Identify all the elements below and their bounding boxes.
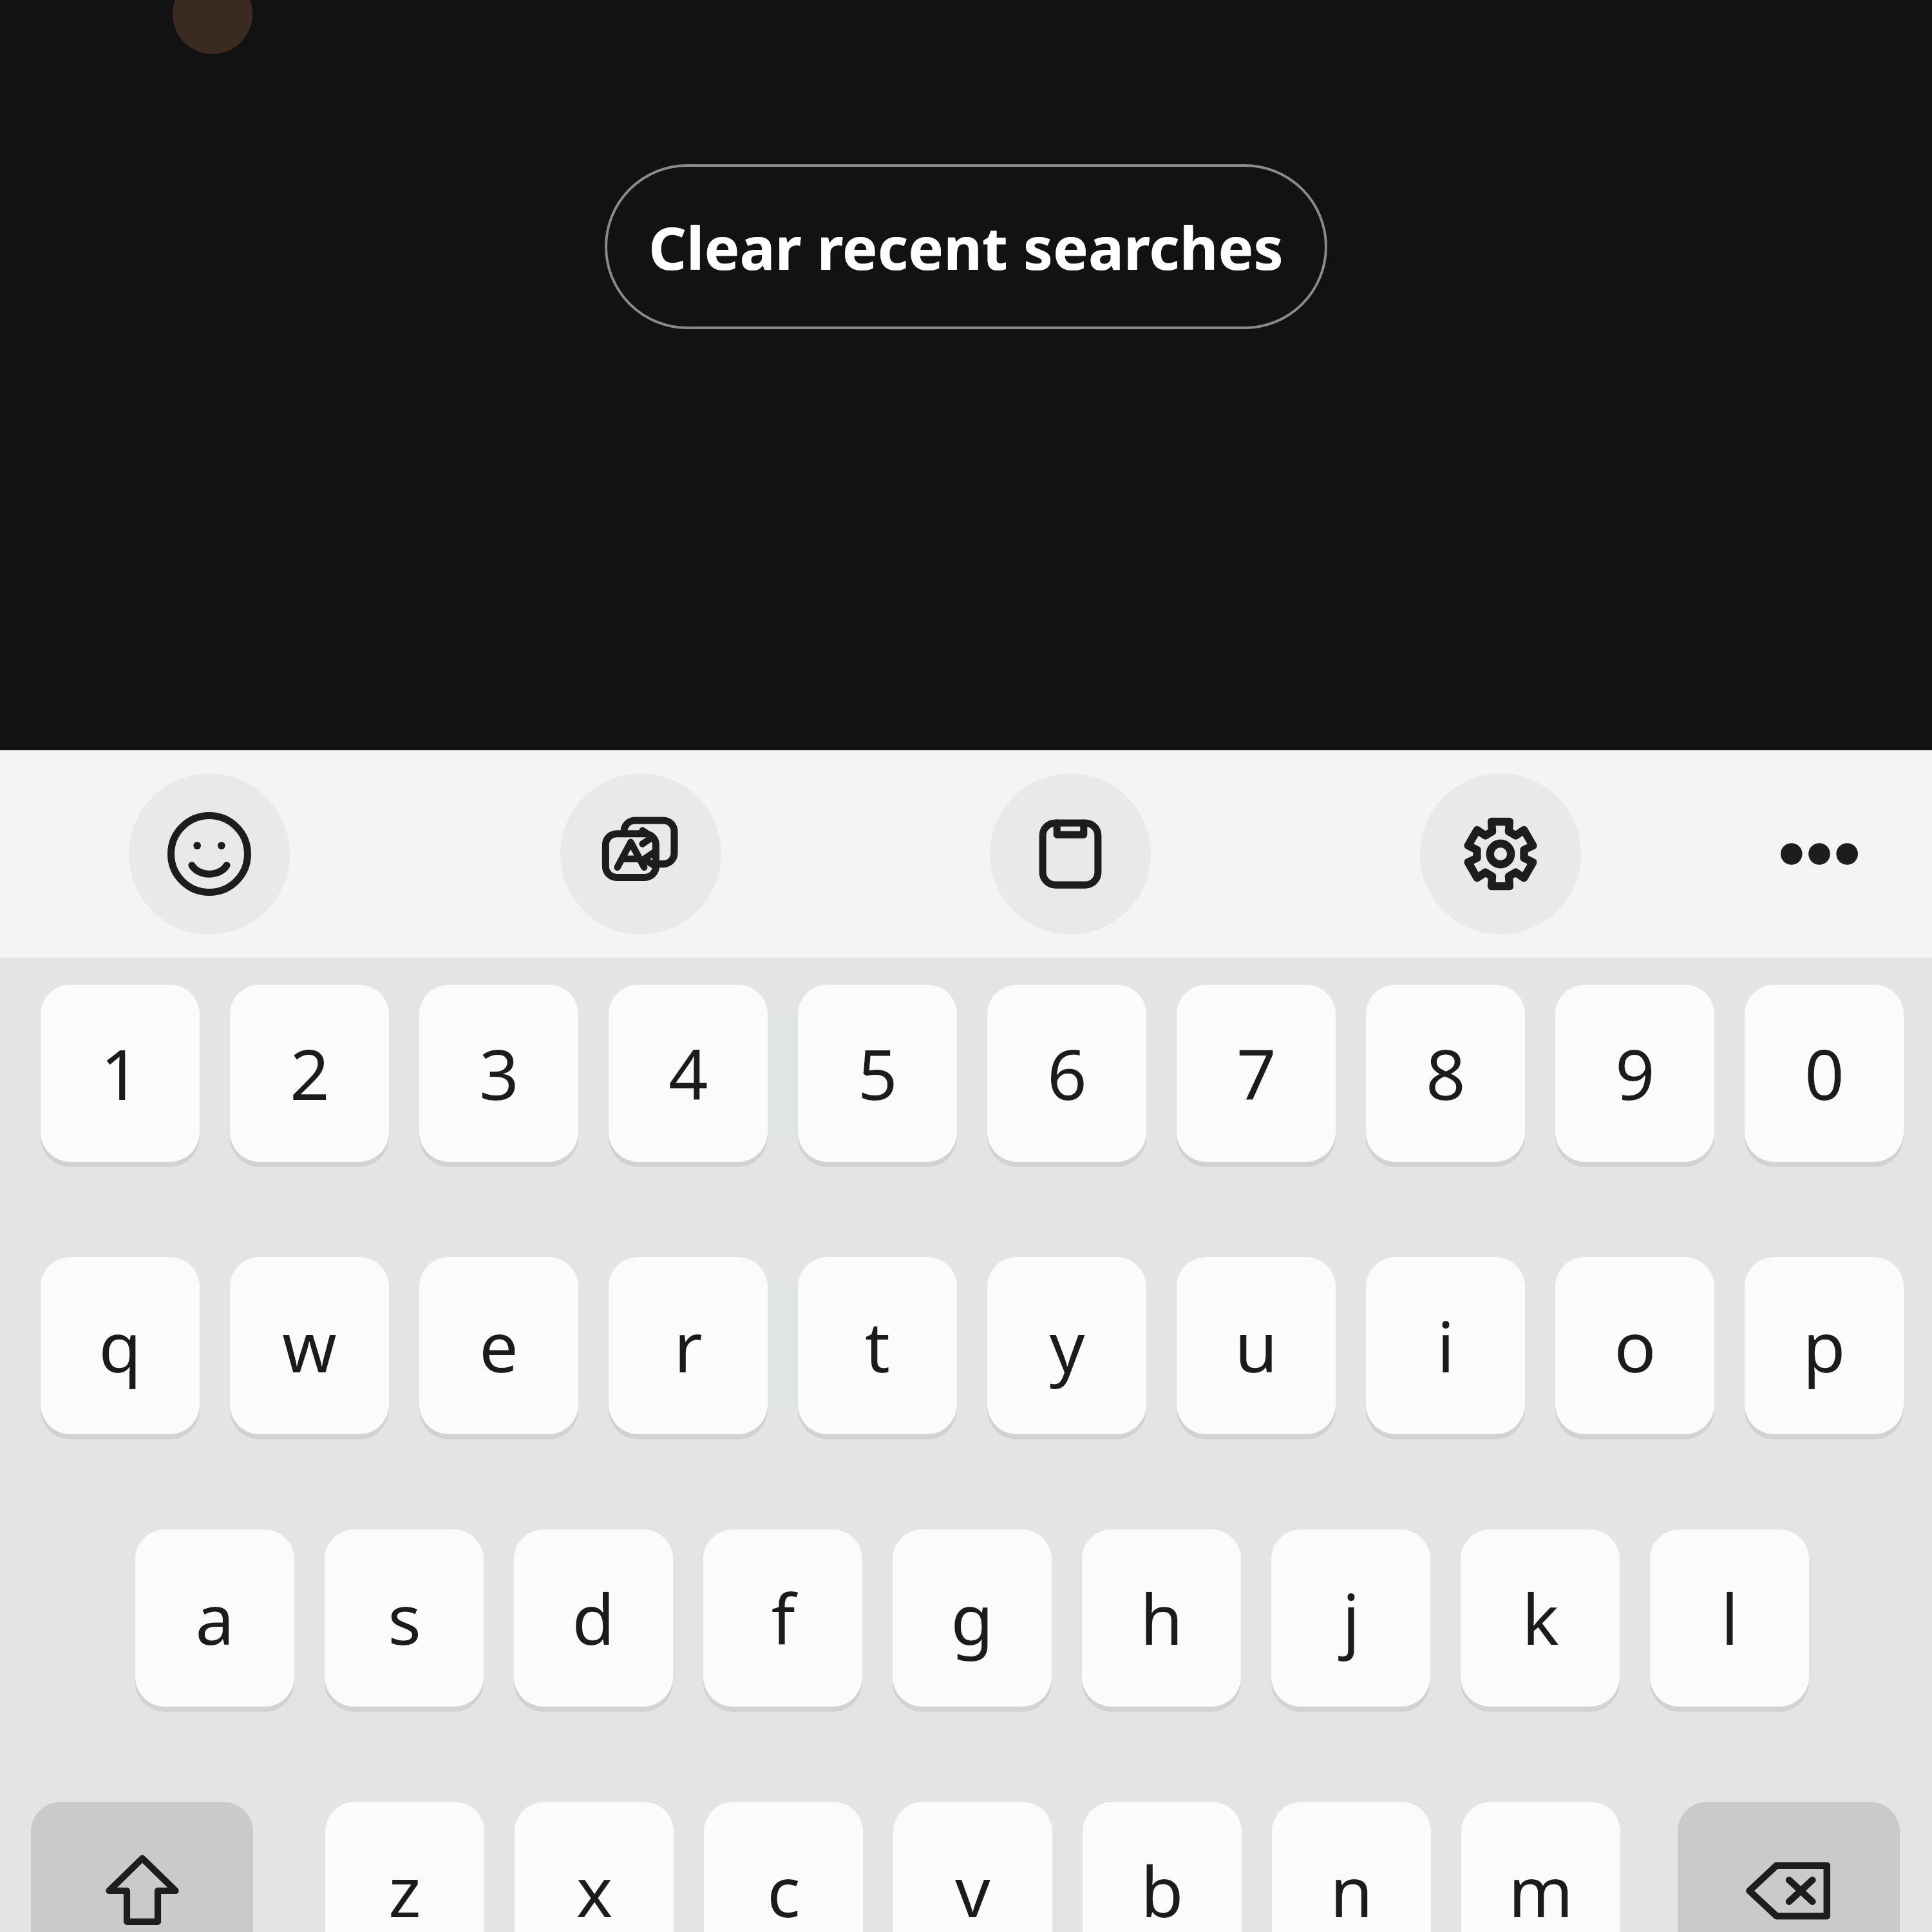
- staticText: r: [674, 1298, 703, 1393]
- button[interactable]: u: [1177, 1257, 1336, 1434]
- button[interactable]: e: [419, 1257, 578, 1434]
- button[interactable]: 3: [419, 985, 578, 1162]
- staticText: g: [951, 1571, 994, 1665]
- button[interactable]: r: [609, 1257, 768, 1434]
- button[interactable]: d: [514, 1529, 673, 1707]
- button[interactable]: h: [1082, 1529, 1241, 1707]
- button[interactable]: l: [1650, 1529, 1809, 1707]
- staticText: a: [195, 1571, 234, 1665]
- button[interactable]: More options: [1745, 780, 1893, 928]
- button[interactable]: Emoji: [129, 773, 290, 934]
- staticText: e: [479, 1298, 518, 1393]
- button[interactable]: p: [1745, 1257, 1904, 1434]
- button[interactable]: i: [1366, 1257, 1525, 1434]
- staticText: 0: [1804, 1026, 1844, 1121]
- staticText: w: [282, 1298, 337, 1393]
- button[interactable]: v: [893, 1802, 1052, 1932]
- staticText: v: [955, 1843, 990, 1932]
- staticText: b: [1141, 1843, 1184, 1932]
- button[interactable]: a: [135, 1529, 294, 1707]
- staticText: f: [771, 1571, 795, 1665]
- button[interactable]: Settings: [1420, 773, 1581, 934]
- staticText: j: [1342, 1571, 1360, 1665]
- staticText: d: [572, 1571, 615, 1665]
- staticText: y: [1049, 1298, 1085, 1393]
- button[interactable]: c: [704, 1802, 863, 1932]
- staticText: o: [1614, 1298, 1656, 1393]
- button[interactable]: k: [1461, 1529, 1620, 1707]
- button[interactable]: y: [987, 1257, 1146, 1434]
- button[interactable]: g: [893, 1529, 1052, 1707]
- button[interactable]: Backspace: [1678, 1802, 1900, 1932]
- button[interactable]: 8: [1366, 985, 1525, 1162]
- button[interactable]: t: [798, 1257, 957, 1434]
- button[interactable]: 1: [41, 985, 200, 1162]
- staticText: 1: [100, 1026, 140, 1121]
- button[interactable]: n: [1272, 1802, 1431, 1932]
- staticText: k: [1522, 1571, 1559, 1665]
- button[interactable]: 0: [1745, 985, 1904, 1162]
- staticText: u: [1235, 1298, 1278, 1393]
- staticText: i: [1437, 1298, 1455, 1393]
- staticText: c: [767, 1843, 800, 1932]
- staticText: 5: [858, 1026, 898, 1121]
- button[interactable]: Shift: [31, 1802, 253, 1932]
- button[interactable]: s: [325, 1529, 484, 1707]
- staticText: p: [1803, 1298, 1846, 1393]
- button[interactable]: j: [1271, 1529, 1430, 1707]
- button[interactable]: o: [1555, 1257, 1714, 1434]
- button[interactable]: m: [1461, 1802, 1620, 1932]
- button[interactable]: 7: [1177, 985, 1336, 1162]
- staticText: m: [1508, 1843, 1573, 1932]
- staticText: h: [1140, 1571, 1183, 1665]
- button[interactable]: Translate: [560, 773, 721, 934]
- staticText: 3: [479, 1026, 519, 1121]
- staticText: 7: [1236, 1026, 1276, 1121]
- button[interactable]: 4: [609, 985, 768, 1162]
- staticText: z: [388, 1843, 421, 1932]
- staticText: Clear recent searches: [649, 207, 1283, 287]
- button[interactable]: x: [515, 1802, 674, 1932]
- button[interactable]: Clear recent searches: [605, 164, 1327, 329]
- staticText: n: [1330, 1843, 1373, 1932]
- staticText: x: [576, 1843, 613, 1932]
- staticText: q: [99, 1298, 142, 1393]
- staticText: 8: [1426, 1026, 1466, 1121]
- button[interactable]: 9: [1555, 985, 1714, 1162]
- staticText: t: [865, 1298, 890, 1393]
- button[interactable]: 2: [230, 985, 389, 1162]
- button[interactable]: w: [230, 1257, 389, 1434]
- button[interactable]: 6: [987, 985, 1146, 1162]
- staticText: s: [388, 1571, 421, 1665]
- button[interactable]: z: [325, 1802, 484, 1932]
- button[interactable]: 5: [798, 985, 957, 1162]
- staticText: 9: [1615, 1026, 1655, 1121]
- staticText: l: [1721, 1571, 1739, 1665]
- staticText: 2: [290, 1026, 330, 1121]
- button[interactable]: b: [1083, 1802, 1242, 1932]
- staticText: 6: [1047, 1026, 1087, 1121]
- button[interactable]: q: [41, 1257, 200, 1434]
- button[interactable]: Clipboard: [990, 773, 1151, 934]
- staticText: 4: [668, 1026, 708, 1121]
- button[interactable]: f: [703, 1529, 862, 1707]
